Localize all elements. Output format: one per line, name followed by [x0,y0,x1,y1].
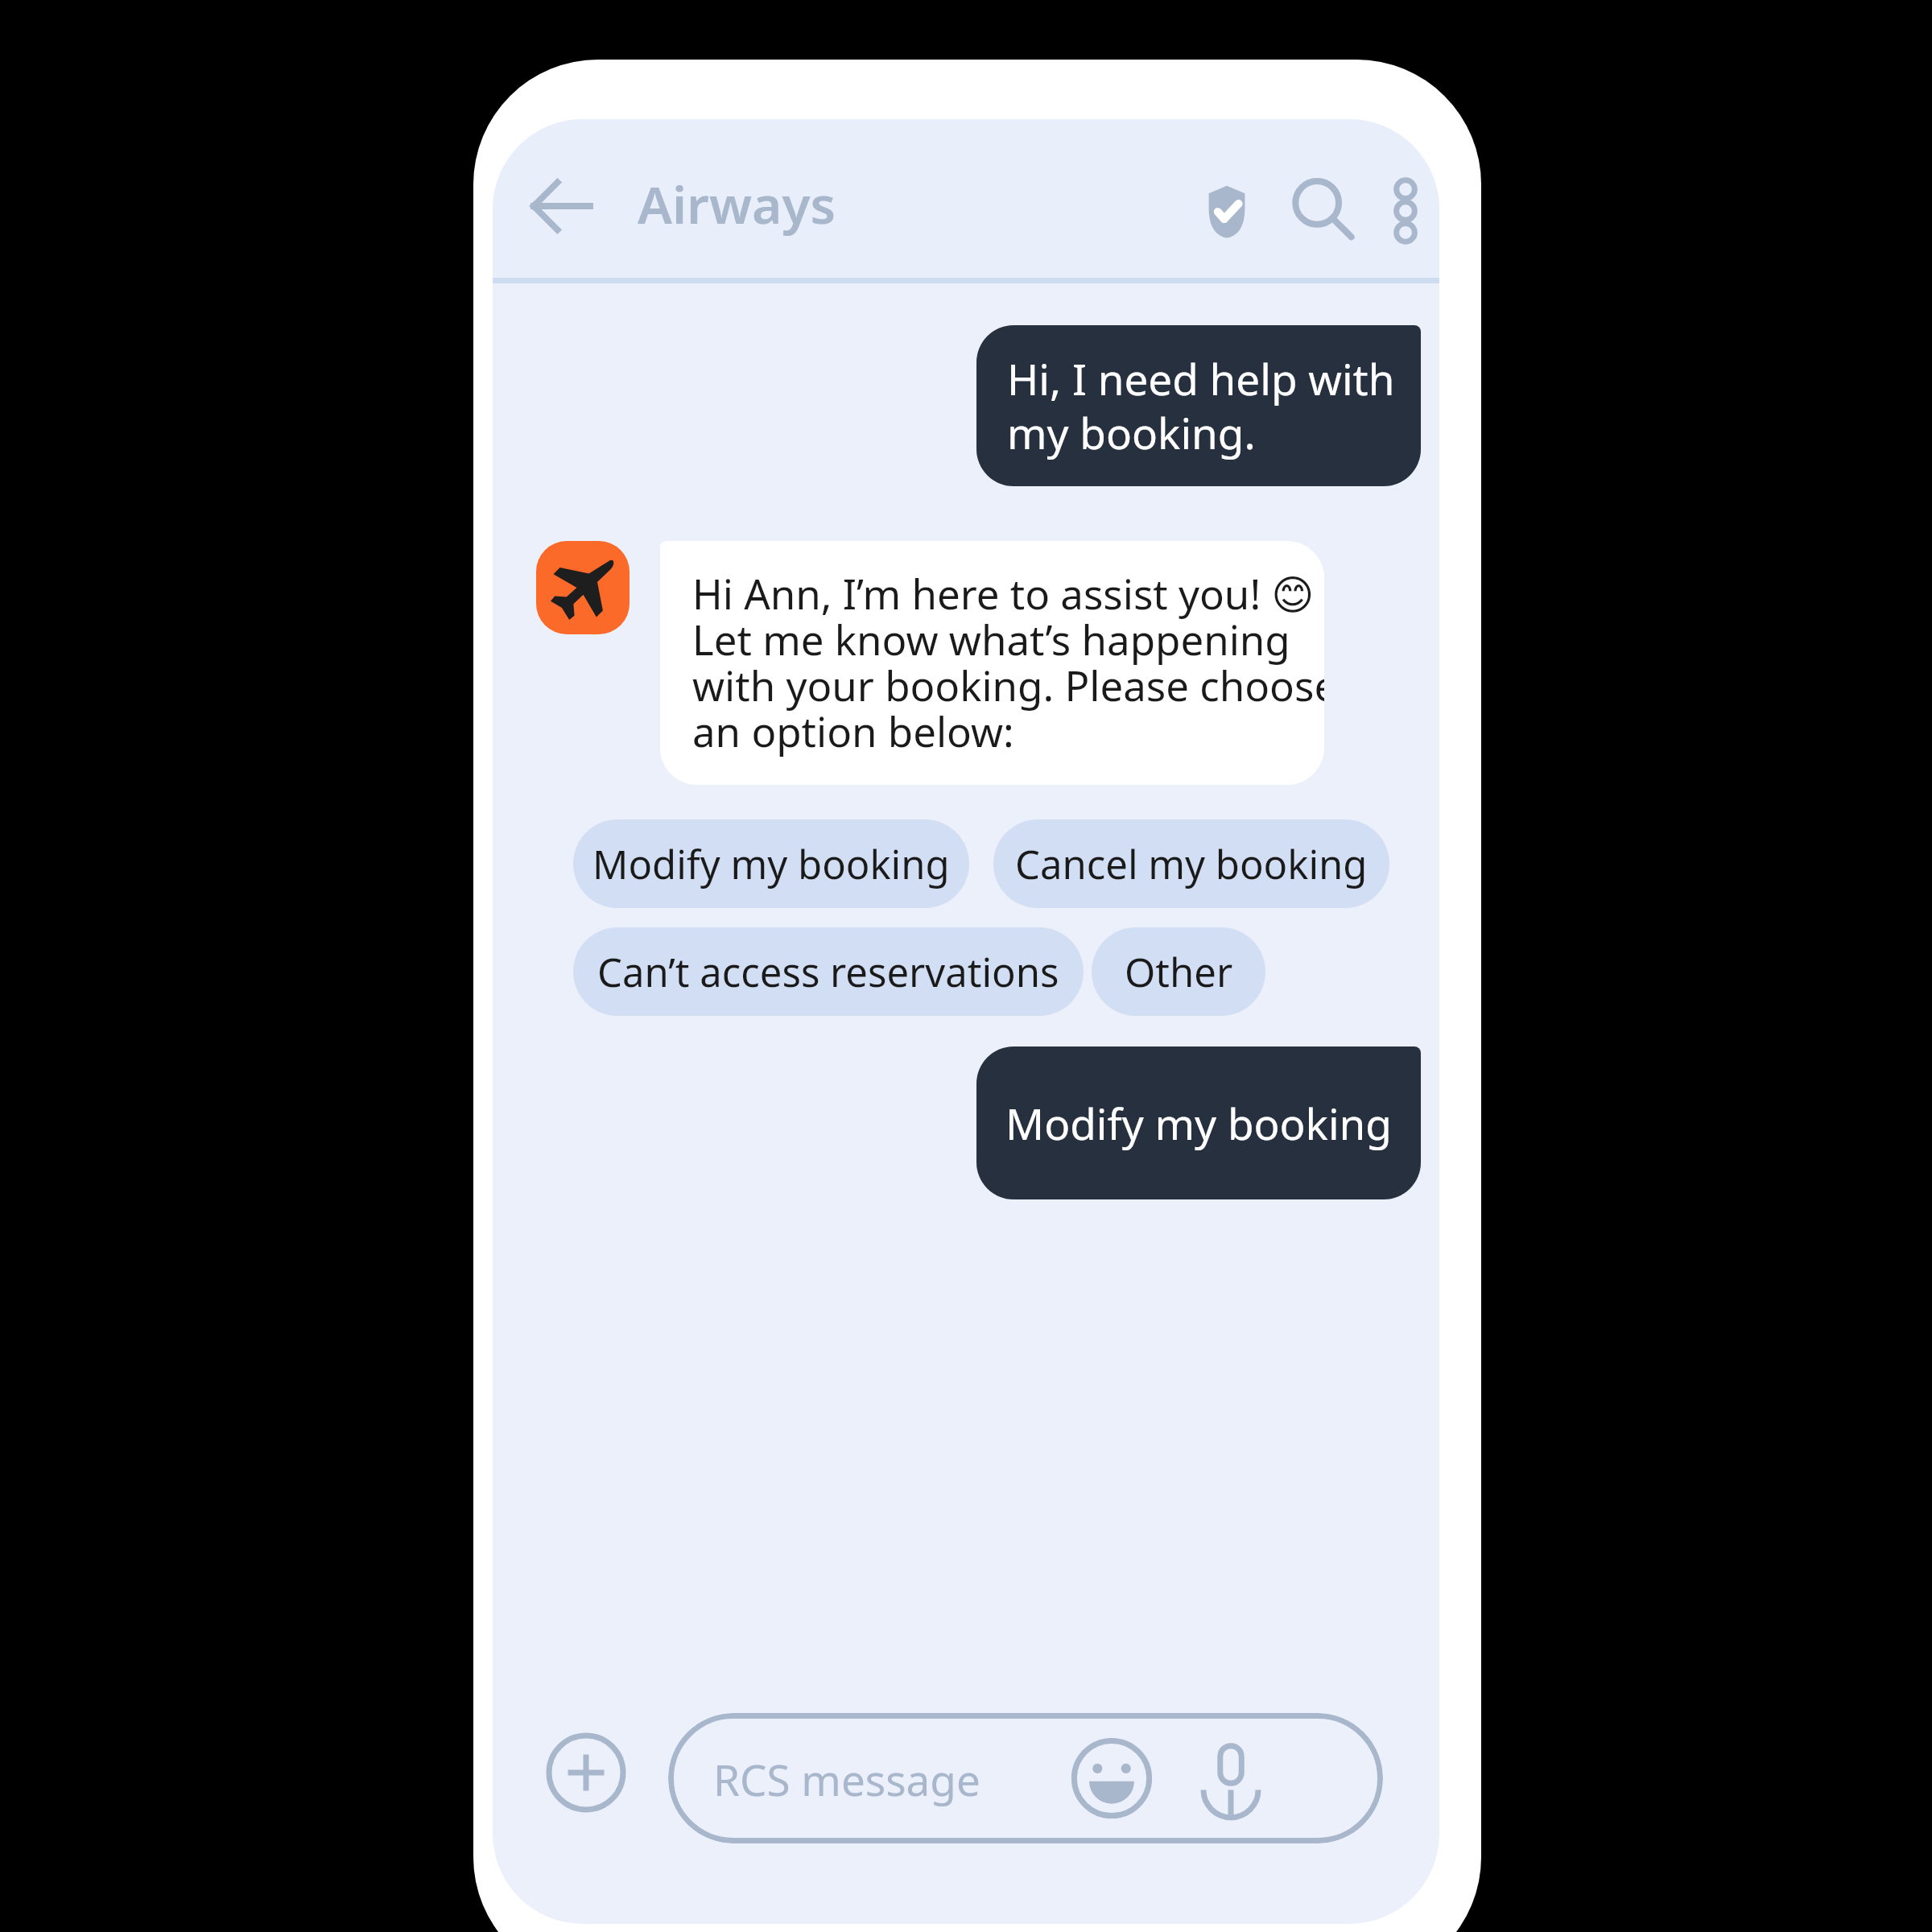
button[interactable]: Attach [546,1732,626,1813]
button[interactable]: Voice message [1180,1728,1282,1829]
button[interactable]: Hi Ann, I’m here to assist you! 😊 Let me… [660,541,1324,785]
button[interactable]: Emoji [1061,1728,1162,1829]
staticText: Other [1125,945,1233,999]
button[interactable]: Modify my booking [976,1046,1421,1199]
staticText: Modify my booking [1005,1094,1392,1152]
staticText: Airways [638,169,836,239]
staticText: Cancel my booking [1015,837,1368,891]
button[interactable]: Cancel my booking [993,819,1389,908]
staticText: Hi Ann, I’m here to assist you! 😊 Let me… [692,565,1324,759]
staticText: Hi, I need help with my booking. [1007,349,1395,462]
staticText: Modify my booking [592,837,950,891]
staticText: Can’t access reservations [597,945,1059,999]
button[interactable]: Can’t access reservations [573,927,1084,1016]
button[interactable]: Modify my booking [573,819,969,908]
staticText: RCS message [713,1750,980,1808]
button[interactable]: Search [1278,166,1368,256]
button[interactable]: Other [1092,927,1265,1016]
button[interactable]: More options [1372,166,1439,256]
button[interactable]: Airways logo [536,541,630,634]
button[interactable]: Back [525,169,599,243]
button[interactable]: RCS message [668,1713,1383,1843]
button[interactable]: Hi, I need help with my booking. [976,325,1421,486]
button[interactable]: Verified business [1182,166,1272,256]
